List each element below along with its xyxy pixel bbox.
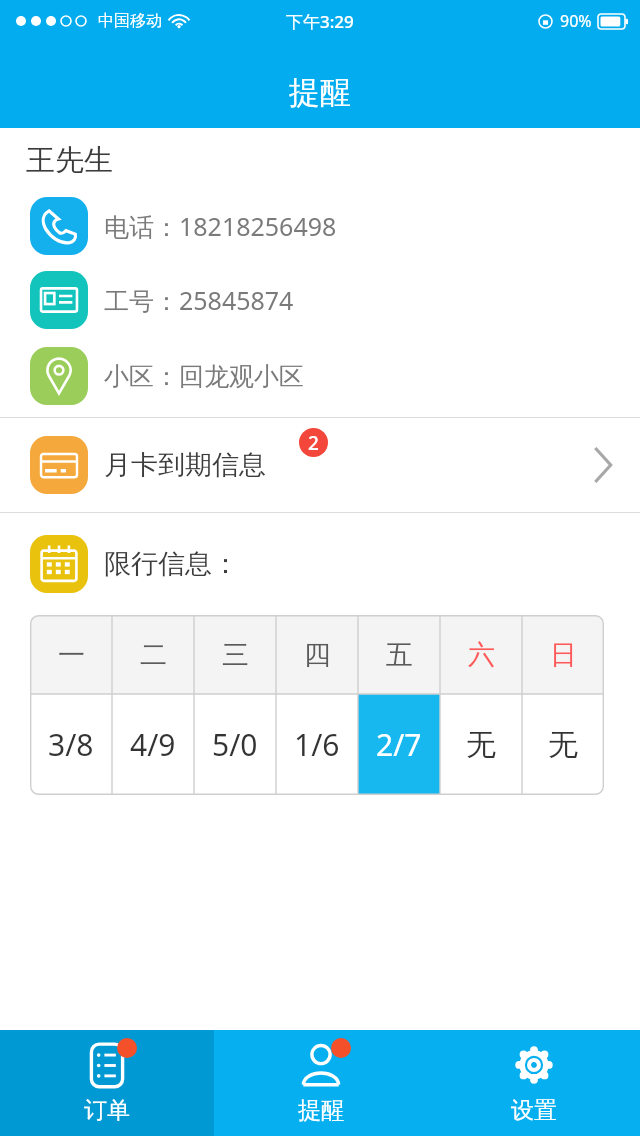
staticText: 中国移动 — [98, 11, 162, 31]
button[interactable]: 4/9 — [112, 694, 194, 795]
staticText: 工号：25845874 — [104, 283, 294, 317]
staticText: 设置 — [511, 1096, 557, 1125]
button[interactable]: 四 — [276, 615, 358, 694]
button[interactable]: 1/6 — [276, 694, 358, 795]
staticText: 5/0 — [212, 724, 258, 765]
button[interactable]: 2/7 — [358, 694, 440, 795]
staticText: 王先生 — [26, 142, 113, 179]
staticText: 3/8 — [48, 724, 94, 765]
button[interactable]: 日 — [522, 615, 604, 694]
button[interactable]: 二 — [112, 615, 194, 694]
button[interactable]: 六 — [440, 615, 522, 694]
button[interactable]: 无 — [522, 694, 604, 795]
staticText: 2 — [308, 430, 319, 456]
button[interactable]: 三 — [194, 615, 276, 694]
button[interactable]: 月卡到期信息 — [0, 418, 640, 512]
button[interactable]: 小区：回龙观小区 — [0, 347, 640, 405]
staticText: 一 — [58, 638, 85, 672]
staticText: 二 — [140, 638, 167, 672]
staticText: 六 — [468, 638, 495, 672]
button[interactable]: 设置 — [427, 1030, 640, 1136]
staticText: 4/9 — [130, 724, 176, 765]
staticText: 月卡到期信息 — [104, 448, 266, 482]
staticText: 日 — [550, 638, 577, 672]
staticText: 电话：18218256498 — [104, 209, 337, 243]
button[interactable]: 五 — [358, 615, 440, 694]
staticText: 无 — [548, 726, 578, 764]
staticText: 小区：回龙观小区 — [104, 361, 304, 392]
button[interactable]: 5/0 — [194, 694, 276, 795]
staticText: 无 — [466, 726, 496, 764]
staticText: 提醒 — [298, 1096, 344, 1125]
button[interactable]: 一 — [30, 615, 112, 694]
staticText: 限行信息： — [104, 547, 239, 581]
staticText: 五 — [386, 638, 413, 672]
staticText: 订单 — [84, 1096, 130, 1125]
button[interactable]: 电话：18218256498 — [0, 197, 640, 255]
staticText: 四 — [304, 638, 331, 672]
staticText: 三 — [222, 638, 249, 672]
staticText: 90% — [560, 10, 592, 32]
staticText: 2/7 — [376, 724, 422, 765]
staticText: 下午3:29 — [286, 10, 354, 33]
button[interactable]: 订单 — [0, 1030, 214, 1136]
button[interactable]: 无 — [440, 694, 522, 795]
button[interactable]: 提醒 — [214, 1030, 427, 1136]
button[interactable]: 3/8 — [30, 694, 112, 795]
staticText: 1/6 — [294, 724, 340, 765]
button[interactable]: 工号：25845874 — [0, 271, 640, 329]
staticText: 提醒 — [289, 73, 351, 112]
